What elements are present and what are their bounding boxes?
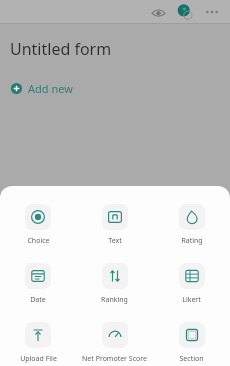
button[interactable]: Ranking [76,261,153,307]
button[interactable]: Choice [0,202,76,248]
staticText: Net Promoter Score [82,354,147,364]
staticText: Add new [28,81,73,96]
button[interactable]: Likert [153,261,230,307]
button[interactable]: Net Promoter Score [76,320,153,366]
button[interactable]: Text [76,202,153,248]
button[interactable]: Preview [146,0,170,24]
button[interactable]: Date [0,261,76,307]
staticText: Section [179,354,204,364]
button[interactable]: More options [200,0,224,24]
staticText: Upload File [20,354,57,364]
staticText: Date [30,295,46,305]
button[interactable]: Add new [10,79,74,98]
button[interactable]: Account [173,0,197,24]
staticText: Ranking [101,295,128,305]
button[interactable]: Upload File [0,320,76,366]
button[interactable]: Section [153,320,230,366]
staticText: Rating [181,236,203,246]
button[interactable]: Rating [153,202,230,248]
staticText: Likert [182,295,201,305]
staticText: Untitled form [10,38,112,60]
staticText: Text [108,236,122,246]
staticText: Choice [27,236,50,246]
